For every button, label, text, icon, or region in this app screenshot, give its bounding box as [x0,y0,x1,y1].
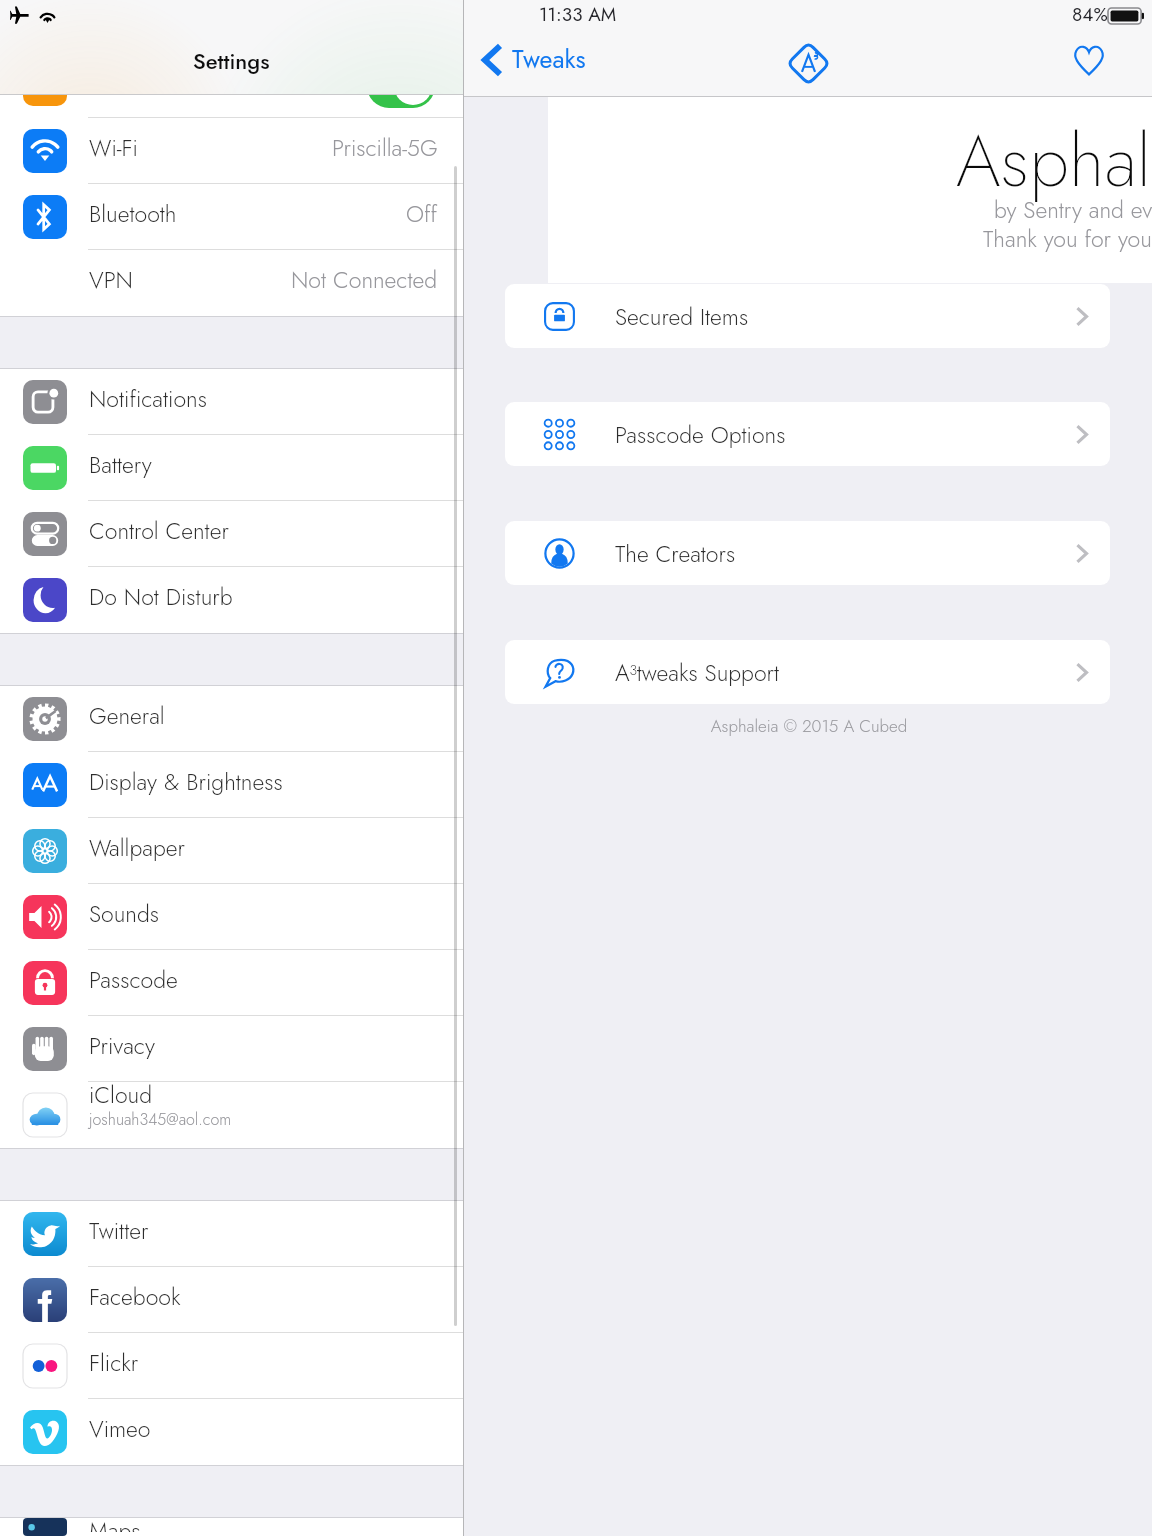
staticText: The Creators [615,537,1076,570]
staticText: Not Connected [291,263,438,296]
button[interactable]: Secured Items [505,284,1110,348]
staticText: Battery [89,448,152,481]
staticText: Do Not Disturb [89,580,233,613]
staticText: VPN [89,263,133,296]
staticText: Maps [89,1514,141,1532]
button[interactable]: Control Center [0,501,463,567]
staticText: Flickr [89,1346,139,1379]
staticText: by Sentry and evilgoldfish [994,193,1152,226]
button[interactable]: Tweaks [474,38,596,82]
staticText: Passcode Options [615,418,1076,451]
staticText: Asphaleia [956,109,1152,213]
staticText: Display & Brightness [89,765,283,798]
button[interactable]: Do Not Disturb [0,567,463,633]
button[interactable]: Wallpaper [0,818,463,884]
staticText: Privacy [89,1029,155,1062]
button[interactable]: Battery [0,435,463,501]
staticText: Notifications [89,382,207,415]
button[interactable]: Vimeo [0,1399,463,1465]
staticText: A³tweaks Support [615,656,1076,689]
staticText: Bluetooth [89,197,177,230]
staticText: Sounds [89,897,160,930]
staticText: Priscilla-5G [332,131,438,164]
button[interactable]: Bluetooth [0,184,463,250]
button[interactable]: General [0,686,463,752]
button[interactable]: Favorite [1069,40,1109,80]
button[interactable]: Flickr [0,1333,463,1399]
staticText: Control Center [89,514,229,547]
staticText: 84% [1072,1,1108,28]
button[interactable]: Twitter [0,1201,463,1267]
button[interactable]: A cubed logo [782,37,834,89]
staticText: Twitter [89,1214,149,1247]
staticText: Asphaleia © 2015 A Cubed [508,714,1110,739]
staticText: Secured Items [615,300,1076,333]
staticText: joshuah345@aol.com [89,1108,232,1131]
staticText: Settings [193,45,270,77]
button[interactable]: Wi-Fi [0,118,463,184]
button[interactable]: Passcode Options [505,402,1110,466]
staticText: Wi-Fi [89,131,138,164]
staticText: Tweaks [512,41,586,77]
staticText: Thank you for your purchase! [983,222,1152,255]
staticText: iCloud [89,1078,153,1111]
button[interactable]: Passcode [0,950,463,1016]
button[interactable]: Maps [0,1518,463,1536]
staticText: 11:33 AM [539,1,617,28]
button[interactable]: Display & Brightness [0,752,463,818]
button[interactable]: Facebook [0,1267,463,1333]
button[interactable]: Sounds [0,884,463,950]
staticText: Vimeo [89,1412,151,1445]
button[interactable]: A³tweaks Support [505,640,1110,704]
button[interactable]: Notifications [0,369,463,435]
button[interactable]: The Creators [505,521,1110,585]
staticText: General [89,699,165,732]
staticText: Wallpaper [89,831,185,864]
button[interactable]: VPN [0,250,463,316]
staticText: Facebook [89,1280,181,1313]
button[interactable]: Privacy [0,1016,463,1082]
button[interactable]: iCloud [0,1082,463,1148]
staticText: Passcode [89,963,178,996]
staticText: Off [406,197,438,230]
